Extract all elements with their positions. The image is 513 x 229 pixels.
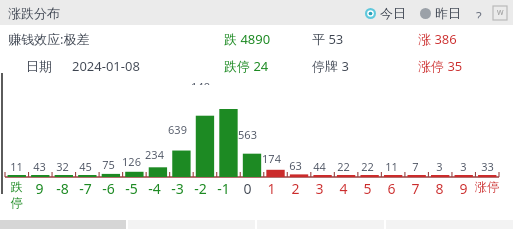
staticText: -7: [79, 179, 92, 198]
staticText: 2024-01-08: [72, 57, 140, 75]
staticText: 1480: [189, 79, 212, 85]
staticText: 涨停 35: [418, 57, 463, 75]
staticText: 跌停 24: [224, 57, 269, 75]
staticText: 跌 4890: [224, 30, 271, 48]
staticText: 6: [387, 179, 396, 198]
staticText: -2: [194, 179, 207, 198]
staticText: 22: [337, 159, 350, 174]
staticText: 563: [238, 127, 257, 142]
staticText: 平 53: [312, 30, 344, 48]
staticText: 今日: [380, 5, 406, 21]
staticText: 639: [168, 122, 187, 137]
staticText: 1: [267, 179, 276, 198]
staticText: 涨 386: [418, 30, 457, 48]
staticText: 2: [291, 179, 300, 198]
staticText: 45: [79, 159, 92, 174]
staticText: 3: [436, 159, 443, 174]
staticText: 234: [145, 147, 164, 162]
staticText: -5: [125, 179, 138, 198]
staticText: -8: [56, 179, 69, 198]
staticText: 9: [459, 179, 468, 198]
staticText: 涨跌分布: [8, 5, 60, 21]
staticText: 7: [411, 179, 420, 198]
staticText: 3: [460, 159, 467, 174]
staticText: 126: [122, 154, 141, 169]
staticText: 22: [361, 159, 374, 174]
button[interactable]: 导出报表: [493, 6, 507, 20]
staticText: -4: [148, 179, 161, 198]
button[interactable]: 今日: [365, 5, 406, 21]
staticText: 43: [33, 159, 46, 174]
staticText: 5: [363, 179, 372, 198]
staticText: ?: [476, 7, 482, 19]
staticText: 9: [35, 179, 44, 198]
staticText: 11: [385, 159, 398, 174]
staticText: 涨停: [475, 179, 499, 194]
staticText: 停牌 3: [312, 57, 349, 75]
staticText: 4: [339, 179, 348, 198]
staticText: 63: [289, 158, 302, 173]
staticText: 跌停: [5, 179, 28, 211]
staticText: 0: [243, 179, 252, 198]
staticText: -3: [171, 179, 184, 198]
button[interactable]: 帮助: [473, 7, 485, 19]
staticText: 赚钱效应:极差: [8, 30, 90, 48]
staticText: 33: [481, 159, 494, 174]
button[interactable]: 昨日: [420, 5, 461, 21]
staticText: 3: [315, 179, 324, 198]
staticText: -1: [217, 179, 230, 198]
staticText: 32: [56, 159, 69, 174]
staticText: W: [497, 8, 504, 18]
staticText: 昨日: [435, 5, 461, 21]
staticText: -6: [102, 179, 115, 198]
staticText: 44: [313, 159, 326, 174]
staticText: 11: [10, 159, 23, 174]
staticText: 日期: [26, 58, 52, 74]
staticText: 174: [262, 151, 281, 166]
staticText: 75: [102, 157, 115, 172]
staticText: 8: [435, 179, 444, 198]
staticText: 7: [412, 159, 419, 174]
